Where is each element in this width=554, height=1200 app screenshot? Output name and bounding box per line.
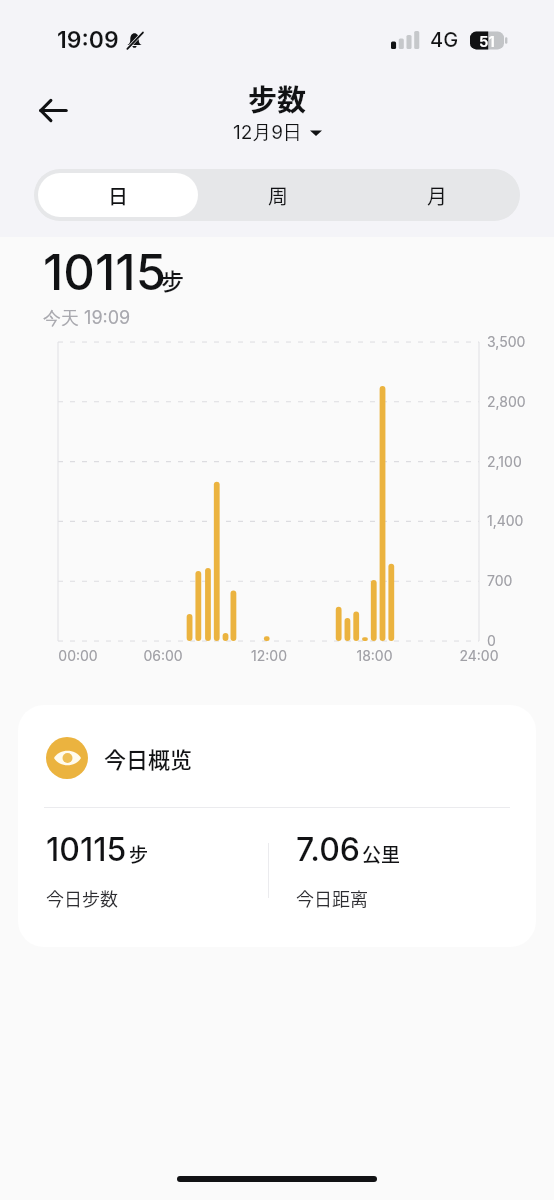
staticText: 12月9日 [233, 121, 303, 145]
button[interactable]: 月 [357, 173, 516, 217]
staticText: 1,400 [487, 512, 524, 529]
staticText: 今日概览 [104, 742, 193, 774]
button[interactable]: 今日概览 [18, 705, 536, 947]
staticText: 10115 [43, 243, 166, 302]
staticText: 51 [479, 32, 495, 50]
staticText: 19:09 [57, 26, 119, 54]
button[interactable]: Back [25, 82, 81, 138]
staticText: 公里 [362, 840, 401, 868]
staticText: 步 [161, 263, 184, 296]
staticText: 7.06 [296, 830, 360, 869]
staticText: 12:00 [251, 647, 287, 664]
staticText: 700 [487, 572, 513, 589]
staticText: 今日步数 [46, 885, 118, 911]
staticText: 10115 [46, 830, 127, 869]
staticText: 4G [430, 28, 459, 52]
staticText: 00:00 [58, 647, 98, 664]
staticText: 步数 [248, 77, 307, 119]
staticText: 0 [487, 632, 496, 649]
button[interactable]: 日 [38, 173, 198, 217]
staticText: 3,500 [487, 333, 526, 350]
staticText: 24:00 [459, 647, 499, 664]
staticText: 步 [129, 840, 149, 868]
button[interactable]: 周 [198, 173, 357, 217]
staticText: 06:00 [143, 647, 183, 664]
staticText: 日 [108, 181, 128, 210]
staticText: 今天 19:09 [43, 307, 131, 330]
staticText: 18:00 [356, 647, 393, 664]
button[interactable]: 12月9日 [233, 121, 322, 145]
staticText: 2,800 [487, 393, 526, 410]
staticText: 周 [268, 181, 288, 210]
staticText: 2,100 [487, 453, 522, 470]
staticText: 今日距离 [296, 885, 368, 911]
staticText: 月 [427, 181, 447, 210]
